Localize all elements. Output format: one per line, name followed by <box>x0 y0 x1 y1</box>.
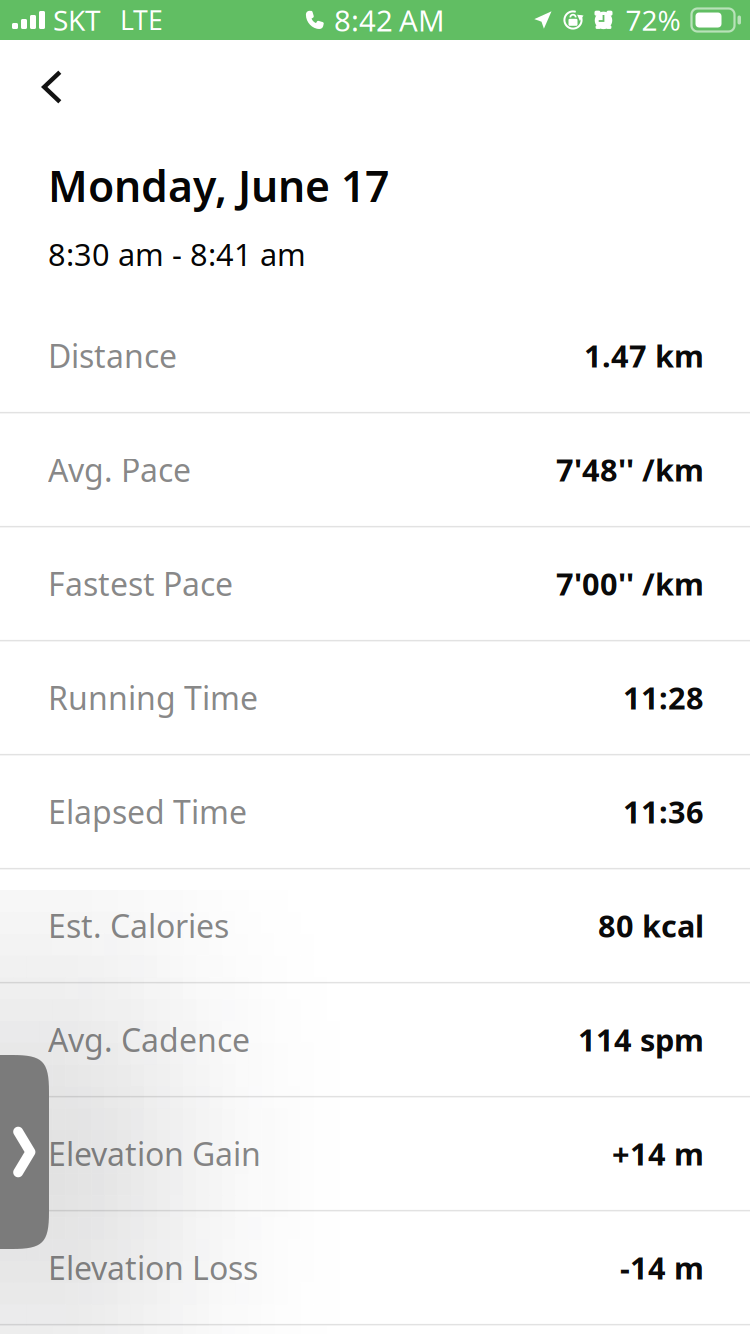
button[interactable]: Avg. Pace <box>0 413 750 527</box>
staticText: 7'48'' /km <box>556 449 704 490</box>
button[interactable]: Elapsed Time <box>0 755 750 869</box>
button[interactable]: Distance <box>0 299 750 413</box>
staticText: 114 spm <box>578 1019 704 1060</box>
staticText: Running Time <box>48 676 258 719</box>
staticText: Distance <box>48 334 177 377</box>
button[interactable]: Est. Calories <box>0 869 750 983</box>
staticText: Elevation Gain <box>48 1132 261 1175</box>
button[interactable]: Elevation Loss <box>0 1211 750 1325</box>
staticText: Elevation Loss <box>48 1246 258 1289</box>
staticText: Avg. Cadence <box>48 1018 250 1061</box>
staticText: +14 m <box>612 1133 704 1174</box>
button[interactable]: Fastest Pace <box>0 527 750 641</box>
staticText: 7'00'' /km <box>556 563 704 604</box>
staticText: 11:36 <box>623 791 704 832</box>
button[interactable]: Avg. Cadence <box>0 983 750 1097</box>
button[interactable]: Running Time <box>0 641 750 755</box>
button[interactable]: Back <box>0 40 88 157</box>
staticText: 11:28 <box>623 677 704 718</box>
staticText: Avg. Pace <box>48 448 191 491</box>
staticText: Elapsed Time <box>48 790 247 833</box>
staticText: -14 m <box>620 1247 704 1288</box>
staticText: 8:42 <box>334 0 393 39</box>
staticText: 80 kcal <box>598 905 704 946</box>
button[interactable]: Open drawer <box>0 1055 49 1249</box>
staticText: 72% <box>625 1 680 39</box>
staticText: Monday, June 17 <box>48 157 389 214</box>
staticText: LTE <box>120 2 163 38</box>
staticText: 8:30 am - 8:41 am <box>48 234 306 274</box>
staticText: Est. Calories <box>48 904 229 947</box>
staticText: 1.47 km <box>584 335 704 376</box>
staticText: AM <box>399 0 445 39</box>
staticText: SKT <box>53 1 101 39</box>
button[interactable]: Elevation Gain <box>0 1097 750 1211</box>
staticText: Fastest Pace <box>48 562 233 605</box>
